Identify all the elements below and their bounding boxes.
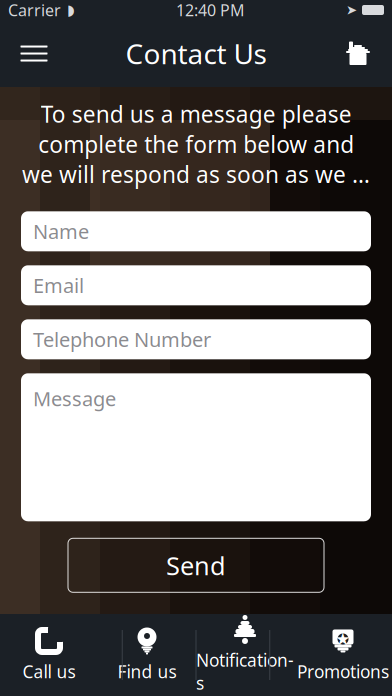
staticText: ◗ [67,2,75,18]
button[interactable]: Message [21,373,371,521]
button[interactable]: ★ [294,620,392,690]
button[interactable]: Find us [98,620,196,690]
staticText: To send us a message please complete the… [22,99,370,189]
staticText: Contact Us [125,35,266,72]
button[interactable]: Name [21,211,371,251]
button[interactable]: Email [21,265,371,305]
staticText: Find us [117,660,176,683]
staticText: ★ [335,629,351,649]
staticText: Message [33,385,116,412]
staticText: Email [33,272,84,299]
staticText: Promotions [297,660,389,683]
button[interactable]: Home [336,31,380,75]
staticText: 12:40 PM [176,0,245,21]
staticText: Telephone Number [33,326,211,353]
staticText: Carrier [8,0,61,21]
button[interactable]: Menu [12,31,56,75]
button[interactable]: Notifications [196,620,294,690]
button[interactable]: Send [68,538,324,592]
staticText: Send [166,548,226,582]
staticText: Name [33,218,89,245]
staticText: ➤ [346,2,357,17]
button[interactable]: Telephone Number [21,319,371,359]
button[interactable]: Call us [0,620,98,690]
staticText: Notifications [196,648,294,694]
staticText: Call us [22,660,75,683]
